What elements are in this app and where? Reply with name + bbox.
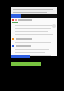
button[interactable]: Account — [52, 24, 56, 28]
